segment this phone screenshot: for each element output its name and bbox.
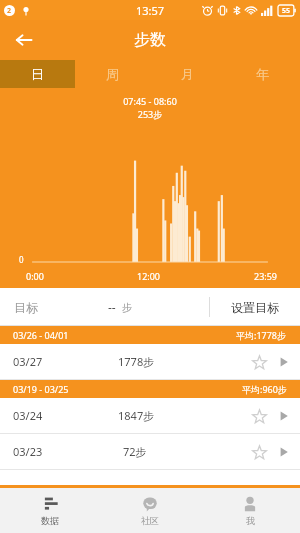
staticText: 13:57 (136, 3, 165, 18)
staticText: 周 (106, 66, 119, 82)
staticText: 03/19 - 03/25 (13, 383, 69, 395)
button[interactable]: 月 (150, 60, 225, 88)
button[interactable]: Favorite (248, 441, 270, 463)
staticText: 253步 (0, 108, 300, 120)
staticText: 日 (31, 66, 44, 82)
staticText: 平均:1778步 (236, 329, 287, 341)
staticText: 03/26 - 04/01 (13, 329, 69, 341)
staticText: 平均:960步 (242, 383, 287, 395)
button[interactable]: Favorite (248, 405, 270, 427)
button[interactable]: 03/24 (0, 398, 300, 433)
button[interactable]: 我 (200, 488, 300, 533)
staticText: 12:00 (137, 270, 161, 282)
button[interactable]: 03/23 (0, 434, 300, 469)
button[interactable]: 年 (225, 60, 300, 88)
button[interactable]: 数据 (0, 488, 100, 533)
staticText: 我 (246, 515, 255, 526)
staticText: 1847步 (118, 408, 155, 423)
staticText: 1778步 (118, 354, 155, 369)
staticText: 07:45 - 08:60 (0, 95, 300, 107)
button[interactable]: 03/27 (0, 344, 300, 379)
button[interactable]: 日 (0, 60, 75, 88)
button[interactable]: 周 (75, 60, 150, 88)
staticText: 23:59 (254, 270, 278, 282)
staticText: 72步 (123, 444, 147, 459)
staticText: 03/23 (13, 444, 43, 459)
staticText: 目标 (14, 300, 38, 315)
staticText: 2 (7, 6, 12, 16)
staticText: 0 (19, 254, 24, 265)
staticText: 03/27 (13, 354, 43, 369)
staticText: 03/24 (13, 408, 43, 423)
button[interactable]: 设置目标 (210, 288, 300, 326)
staticText: 设置目标 (231, 300, 279, 315)
staticText: 社区 (141, 515, 159, 526)
staticText: 0:00 (26, 270, 44, 282)
staticText: 数据 (41, 515, 59, 526)
staticText: 步 (122, 301, 132, 314)
button[interactable]: 社区 (100, 488, 200, 533)
staticText: 年 (256, 66, 269, 82)
staticText: 步数 (134, 30, 166, 50)
staticText: 月 (181, 66, 194, 82)
staticText: -- (108, 299, 116, 315)
button[interactable]: Back (8, 24, 40, 56)
button[interactable]: Favorite (248, 351, 270, 373)
staticText: 55 (282, 6, 291, 16)
